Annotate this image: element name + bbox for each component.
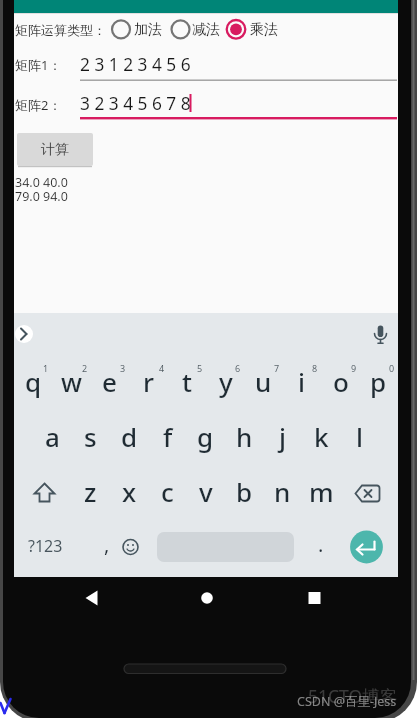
button[interactable]: u: [235, 353, 292, 410]
button[interactable]: h: [216, 408, 273, 465]
staticText: 34.0 40.0: [15, 174, 68, 191]
button[interactable]: [78, 50, 398, 84]
button[interactable]: j: [254, 408, 311, 465]
button[interactable]: [227, 15, 285, 43]
staticText: y: [219, 364, 233, 399]
staticText: 乘法: [250, 21, 278, 39]
staticText: w: [61, 364, 82, 399]
button[interactable]: m: [293, 463, 350, 520]
button[interactable]: a: [24, 408, 81, 465]
staticText: g: [197, 419, 214, 454]
staticText: n: [274, 474, 291, 509]
button[interactable]: z: [62, 463, 119, 520]
staticText: 矩阵2：: [15, 96, 62, 114]
staticText: j: [279, 419, 287, 454]
staticText: 加法: [134, 21, 162, 39]
button[interactable]: q: [5, 353, 62, 410]
button[interactable]: [183, 578, 231, 618]
button[interactable]: t: [158, 353, 215, 410]
button[interactable]: r: [120, 353, 177, 410]
staticText: 矩阵1：: [15, 56, 62, 74]
button[interactable]: [74, 578, 122, 618]
button[interactable]: b: [216, 463, 273, 520]
staticText: m: [309, 474, 334, 509]
button[interactable]: [347, 529, 383, 565]
staticText: 3: [120, 362, 126, 374]
button[interactable]: [290, 578, 338, 618]
staticText: 5: [197, 362, 203, 374]
staticText: 1: [43, 362, 49, 374]
button[interactable]: 计算: [17, 133, 93, 166]
button[interactable]: v: [177, 463, 234, 520]
staticText: .: [318, 531, 324, 558]
staticText: v: [199, 474, 213, 509]
staticText: a: [45, 419, 60, 454]
button[interactable]: [366, 318, 396, 350]
staticText: p: [370, 364, 387, 399]
button[interactable]: [108, 15, 170, 43]
button[interactable]: p: [350, 353, 407, 410]
staticText: ,: [104, 531, 110, 558]
button[interactable]: o: [312, 353, 369, 410]
staticText: 2 3 1 2 3 4 5 6: [80, 53, 191, 77]
staticText: 0: [389, 362, 395, 374]
staticText: u: [255, 364, 272, 399]
button[interactable]: s: [62, 408, 119, 465]
button[interactable]: y: [197, 353, 254, 410]
button[interactable]: w: [43, 353, 100, 410]
button[interactable]: ?123: [1, 528, 89, 563]
staticText: 7: [274, 362, 280, 374]
staticText: z: [84, 474, 97, 509]
staticText: 矩阵运算类型：: [15, 22, 106, 38]
button[interactable]: ,: [85, 522, 129, 566]
staticText: t: [182, 364, 192, 399]
staticText: d: [121, 419, 138, 454]
button[interactable]: [20, 468, 70, 513]
button[interactable]: [12, 318, 36, 350]
staticText: 减法: [192, 21, 220, 39]
button[interactable]: x: [101, 463, 158, 520]
staticText: 6: [235, 362, 241, 374]
staticText: 9: [351, 362, 357, 374]
staticText: o: [333, 364, 349, 399]
staticText: 8: [312, 362, 318, 374]
staticText: CSDN @百里-Jess: [297, 693, 397, 710]
staticText: 79.0 94.0: [15, 188, 68, 205]
staticText: e: [102, 364, 117, 399]
button[interactable]: e: [81, 353, 138, 410]
button[interactable]: i: [273, 353, 330, 410]
button[interactable]: k: [293, 408, 350, 465]
staticText: b: [236, 474, 253, 509]
staticText: 51CTO博客: [308, 684, 398, 708]
staticText: l: [356, 419, 364, 454]
staticText: c: [161, 474, 174, 509]
staticText: ?123: [28, 535, 63, 557]
staticText: f: [163, 419, 173, 454]
staticText: x: [122, 474, 137, 509]
button[interactable]: n: [254, 463, 311, 520]
button[interactable]: l: [331, 408, 388, 465]
staticText: h: [236, 419, 253, 454]
button[interactable]: [112, 525, 150, 569]
staticText: i: [298, 364, 306, 399]
button[interactable]: [78, 90, 398, 122]
button[interactable]: [344, 468, 394, 513]
staticText: k: [314, 419, 329, 454]
staticText: 3 2 3 4 5 6 7 8: [80, 92, 191, 116]
button[interactable]: [170, 15, 227, 43]
button[interactable]: f: [139, 408, 196, 465]
button[interactable]: c: [139, 463, 196, 520]
button[interactable]: d: [101, 408, 158, 465]
staticText: 4: [159, 362, 165, 374]
button[interactable]: .: [299, 522, 343, 566]
button[interactable]: g: [177, 408, 234, 465]
staticText: 2: [82, 362, 88, 374]
staticText: r: [143, 364, 154, 399]
staticText: 计算: [41, 141, 69, 159]
staticText: q: [25, 364, 42, 399]
staticText: s: [84, 419, 97, 454]
